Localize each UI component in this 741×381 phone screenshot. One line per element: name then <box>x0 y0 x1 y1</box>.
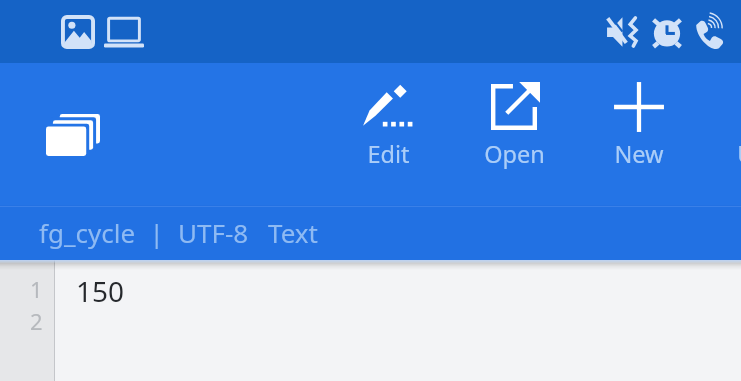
button[interactable]: Open <box>458 54 570 196</box>
staticText: Edit <box>367 138 410 170</box>
staticText: 1 <box>30 274 43 304</box>
button[interactable]: Edit <box>332 54 444 196</box>
staticText: Text <box>268 215 318 250</box>
button[interactable]: Undo <box>711 54 741 196</box>
staticText: fg_cycle <box>39 215 136 250</box>
staticText: Open <box>484 138 545 170</box>
button[interactable]: New <box>583 54 695 196</box>
button[interactable]: Recent files <box>30 98 116 172</box>
staticText: 2 <box>30 306 43 336</box>
staticText: 150 <box>76 272 125 310</box>
staticText: New <box>614 138 664 170</box>
staticText: UTF-8 <box>178 215 249 250</box>
staticText: Undo <box>737 138 741 170</box>
staticText: | <box>136 215 178 250</box>
